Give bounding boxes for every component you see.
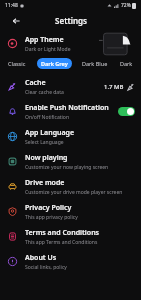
button[interactable]: Now playing	[0, 149, 141, 174]
staticText: Classic	[8, 60, 26, 67]
staticText: Now playing	[25, 153, 68, 163]
button[interactable]: Classic	[7, 58, 27, 69]
staticText: App Theme	[25, 35, 64, 45]
staticText: About Us	[25, 253, 57, 263]
staticText: Cache	[25, 78, 46, 88]
button[interactable]: Dark Blue	[81, 58, 109, 69]
button[interactable]: Privacy Policy	[0, 199, 141, 224]
staticText: Clear cache data	[25, 89, 64, 96]
staticText: Dark Grey	[41, 60, 68, 67]
staticText: 11:48	[5, 2, 18, 9]
staticText: Settings	[55, 15, 87, 26]
staticText: Social links, policy	[25, 264, 67, 271]
staticText: Drive mode	[25, 178, 65, 188]
staticText: 72%	[121, 2, 131, 9]
button[interactable]: About Us	[0, 249, 141, 274]
button[interactable]: Cache	[0, 74, 141, 99]
button[interactable]: Toggle push notification	[118, 107, 135, 116]
button[interactable]: Dark Grey	[37, 58, 72, 69]
button[interactable]: Terms and Conditions	[0, 224, 141, 249]
staticText: Dark or Light Mode	[25, 46, 71, 53]
staticText: 1.7 MB	[104, 83, 124, 91]
staticText: This app Terms and Conditions	[25, 239, 98, 246]
button[interactable]: Enable Push Notification	[0, 99, 141, 124]
button[interactable]: Back	[9, 14, 22, 27]
staticText: App Language	[25, 128, 75, 138]
staticText: On/off Notification	[25, 114, 69, 121]
staticText: Select Language	[25, 139, 64, 146]
staticText: Terms and Conditions	[25, 228, 100, 238]
button[interactable]: App Theme	[0, 30, 141, 57]
button[interactable]: App Language	[0, 124, 141, 149]
staticText: Enable Push Notification	[25, 103, 109, 113]
staticText: Customize your now playing screen	[25, 164, 109, 171]
button[interactable]: Dark	[119, 58, 134, 69]
staticText: This app privacy policy	[25, 214, 78, 221]
staticText: Customize your drive mode player screen	[25, 189, 123, 196]
staticText: Dark	[120, 60, 133, 67]
button[interactable]: Drive mode	[0, 174, 141, 199]
staticText: Privacy Policy	[25, 203, 72, 213]
staticText: Dark Blue	[82, 60, 108, 67]
